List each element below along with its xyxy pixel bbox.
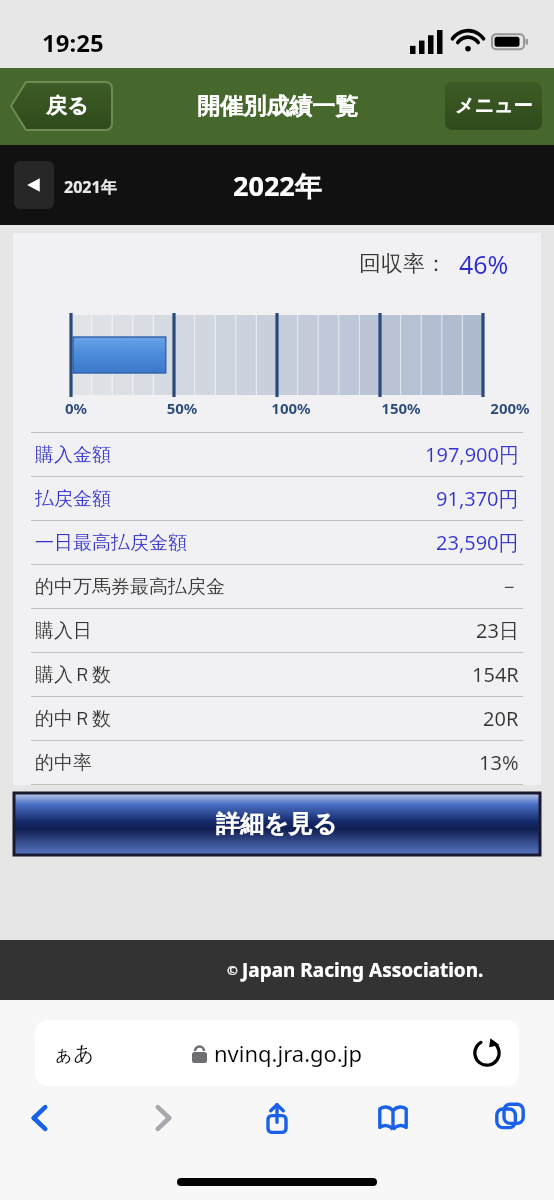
staticText: － [499,574,519,599]
staticText: 150% [376,398,426,418]
button[interactable]: 払戻金額 [13,477,541,520]
staticText: 200% [485,398,535,418]
button[interactable]: 的中率 [13,741,541,784]
staticText: 20R [483,705,519,732]
staticText: 戻る [46,93,89,119]
staticText: 回収率： [359,250,447,278]
button[interactable]: 購入Ｒ数 [13,653,541,696]
staticText: 購入Ｒ数 [35,663,111,687]
button[interactable]: Forward [138,1094,186,1142]
staticText: 23日 [476,617,519,644]
staticText: 2021年 [64,176,117,198]
button[interactable]: Reload [471,1037,503,1069]
button[interactable]: 購入金額 [13,433,541,476]
staticText: 46% [459,247,509,281]
staticText: 100% [266,398,316,418]
button[interactable]: ぁあ [35,1020,519,1086]
staticText: 13% [479,749,519,776]
staticText: 19:25 [42,26,104,59]
button[interactable]: メニュー [445,82,542,130]
staticText: Japan Racing Association. [242,957,484,983]
button[interactable]: 戻る [11,82,112,130]
staticText: © [227,961,238,979]
button[interactable]: 購入日 [13,609,541,652]
staticText: 0% [65,398,115,418]
button[interactable]: 一日最高払戻金額 [13,521,541,564]
button[interactable]: Bookmarks [369,1094,417,1142]
staticText: nvinq.jra.go.jp [214,1038,362,1068]
staticText: メニュー [455,94,533,118]
staticText: ぁあ [53,1041,94,1066]
button[interactable]: Tabs [486,1094,534,1142]
staticText: 154R [472,661,519,688]
staticText: 50% [157,398,207,418]
staticText: 払戻金額 [35,487,111,511]
staticText: 購入日 [35,619,92,643]
staticText: 購入金額 [35,443,111,467]
button[interactable]: Share [253,1094,301,1142]
staticText: 197,900円 [425,441,519,468]
button[interactable]: 詳細を見る [14,793,540,855]
staticText: 的中Ｒ数 [35,707,111,731]
button[interactable]: Back [17,1094,65,1142]
staticText: 23,590円 [436,529,519,556]
button[interactable]: 的中万馬券最高払戻金 [13,565,541,608]
staticText: 的中万馬券最高払戻金 [35,575,225,599]
staticText: 詳細を見る [216,809,338,839]
button[interactable]: 的中Ｒ数 [13,697,541,740]
staticText: 開催別成績一覧 [197,92,358,121]
staticText: 91,370円 [436,485,519,512]
staticText: 2022年 [233,167,322,204]
staticText: 的中率 [35,751,92,775]
button[interactable]: 前の年 [14,161,54,209]
staticText: 一日最高払戻金額 [35,531,187,555]
